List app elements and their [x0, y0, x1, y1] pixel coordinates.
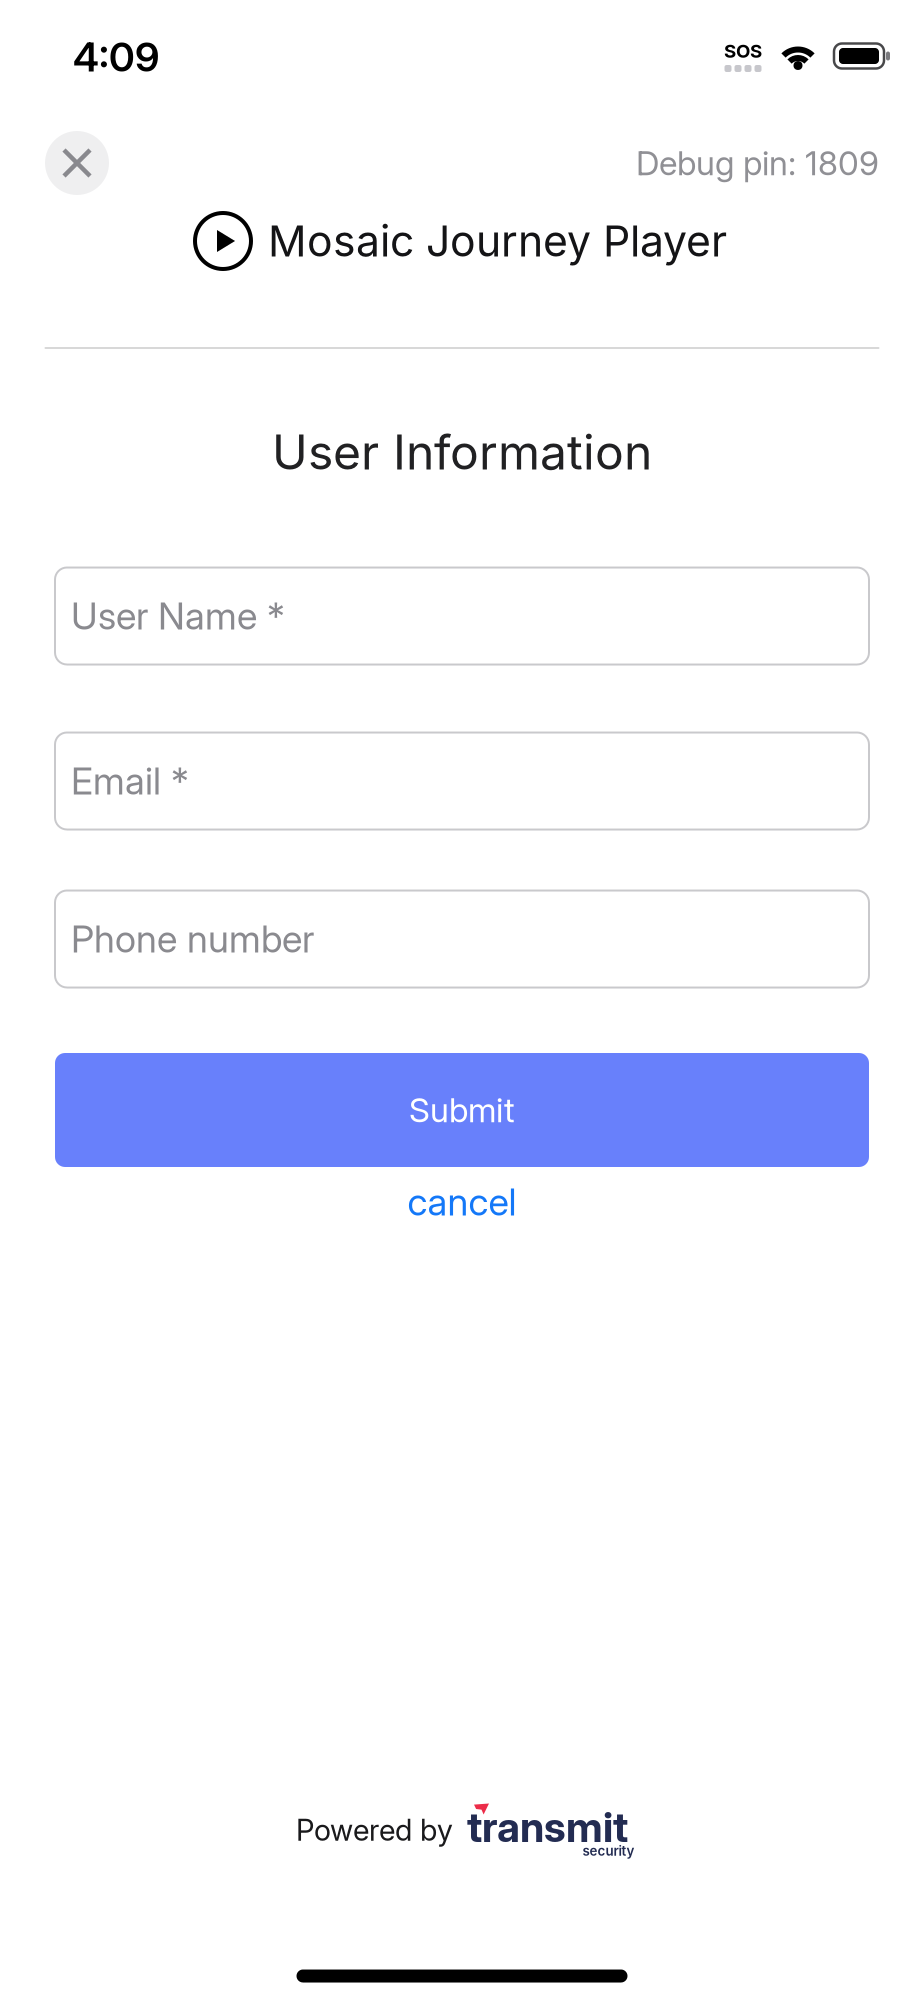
staticText: 4:09: [73, 33, 159, 81]
staticText: Powered by: [296, 1813, 453, 1847]
staticText: Mosaic Journey Player: [268, 216, 727, 266]
staticText: Debug pin: 1809: [636, 143, 879, 183]
staticText: transmit: [467, 1803, 628, 1851]
staticText: security: [582, 1843, 634, 1859]
staticText: Submit: [409, 1090, 515, 1130]
staticText: User Information: [272, 424, 652, 480]
button[interactable]: Close: [45, 131, 109, 195]
staticText: SOS: [724, 40, 762, 62]
staticText: Phone number: [71, 917, 314, 961]
staticText: cancel: [407, 1180, 516, 1224]
staticText: Email *: [71, 759, 189, 803]
button[interactable]: Email *: [55, 732, 869, 829]
button[interactable]: Phone number: [55, 890, 869, 987]
button[interactable]: Submit: [55, 1053, 869, 1167]
button[interactable]: User Name *: [55, 567, 869, 664]
staticText: User Name *: [71, 594, 285, 638]
button[interactable]: cancel: [407, 1180, 516, 1224]
